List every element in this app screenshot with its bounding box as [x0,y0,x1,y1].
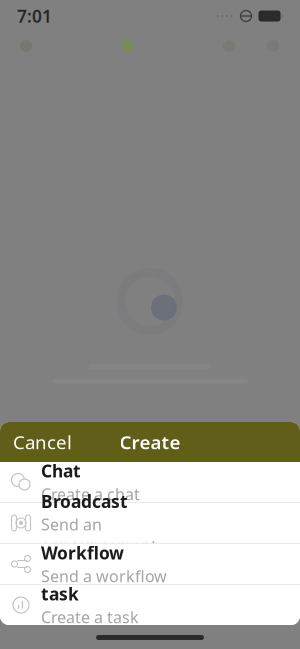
button[interactable]: task [0,585,300,625]
staticText: Create [119,430,180,454]
button[interactable]: Workflow [0,544,300,584]
staticText: Create a task [41,606,139,628]
staticText: Chat [41,459,81,482]
staticText: 7:01 [17,4,52,27]
button[interactable]: Cancel [0,422,85,462]
button[interactable]: Chat [0,462,300,502]
staticText: task [41,582,79,605]
staticText: Send an announcement [41,514,157,556]
staticText: Create a chat [41,483,140,505]
button[interactable]: Broadcast [0,503,300,543]
staticText: Broadcast [41,490,128,513]
staticText: Workflow [41,541,124,564]
staticText: Send a workflow [41,565,167,587]
staticText: Cancel [13,430,72,454]
